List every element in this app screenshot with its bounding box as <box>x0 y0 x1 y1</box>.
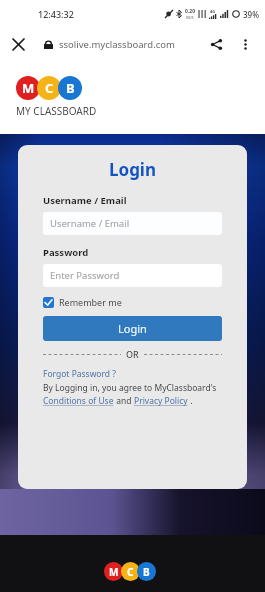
button[interactable]: Close <box>5 31 31 57</box>
staticText: . <box>188 395 193 407</box>
staticText: 39% <box>243 9 259 20</box>
staticText: Remember me <box>59 296 122 308</box>
staticText: ssolive.myclassboard.com <box>59 38 175 51</box>
staticText: M <box>109 565 119 579</box>
button[interactable]: Privacy Policy <box>134 395 188 407</box>
button[interactable]: Forgot Password ? <box>43 368 116 380</box>
button[interactable]: Conditions of Use <box>43 395 114 407</box>
staticText: C <box>127 565 134 579</box>
staticText: Enter Password <box>50 269 120 282</box>
staticText: and <box>114 395 134 407</box>
staticText: 12:43:32 <box>38 8 74 20</box>
staticText: KB/S <box>186 15 194 20</box>
button[interactable]: Remember me <box>43 296 122 308</box>
staticText: OR <box>126 348 139 360</box>
staticText: Username / Email <box>43 194 127 207</box>
staticText: Password <box>43 246 89 259</box>
button[interactable]: More options <box>232 31 258 57</box>
staticText: B <box>143 565 150 579</box>
button[interactable]: Login <box>43 316 222 341</box>
staticText: C <box>45 79 54 97</box>
button[interactable]: Enter Password <box>43 264 222 287</box>
staticText: Login <box>118 321 147 336</box>
staticText: MY CLASSBOARD <box>16 104 97 118</box>
staticText: M <box>22 79 35 97</box>
button[interactable]: Username / Email <box>43 212 222 235</box>
staticText: 4G <box>210 9 216 14</box>
staticText: Username / Email <box>50 217 130 230</box>
staticText: 0.20 <box>185 8 195 15</box>
staticText: B <box>66 79 75 97</box>
button[interactable]: Share <box>203 31 229 57</box>
staticText: Login <box>109 158 157 181</box>
staticText: By Logging in, you agree to MyClassboard… <box>43 382 217 394</box>
